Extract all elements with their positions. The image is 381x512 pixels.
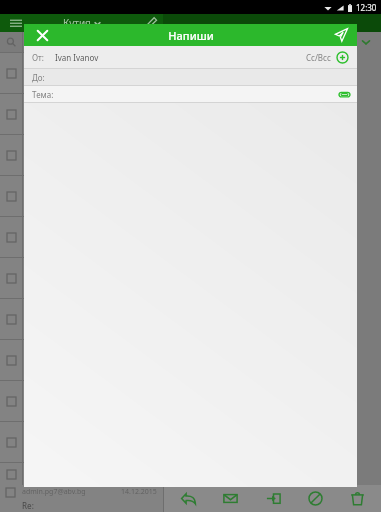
staticText: admin.pg7@abv.bg [22,487,86,497]
button[interactable] [23,135,163,175]
staticText: 12:30 [356,2,377,13]
button[interactable]: От: [24,46,357,68]
button[interactable]: Compose [140,14,162,32]
button[interactable]: Attach file [338,88,351,101]
button[interactable] [0,340,22,380]
staticText: Напиши [168,28,214,43]
button[interactable]: Mail [212,485,248,512]
button[interactable] [0,94,22,134]
button[interactable] [23,299,163,339]
button[interactable] [0,381,22,421]
button[interactable]: До: [24,69,357,85]
button[interactable] [0,299,22,339]
button[interactable] [23,381,163,421]
button[interactable] [23,176,163,216]
button[interactable] [23,258,163,298]
button[interactable] [0,135,22,175]
button[interactable] [0,217,22,257]
button[interactable]: Add Cc Bcc [336,51,349,64]
button[interactable]: Move [255,485,291,512]
button[interactable]: Delete [339,485,375,512]
button[interactable] [23,463,163,485]
button[interactable] [0,422,22,462]
button[interactable] [0,463,22,485]
button[interactable]: Send [325,24,357,46]
staticText: Тема: [32,89,54,100]
button[interactable]: Reply [170,485,206,512]
button[interactable] [0,176,22,216]
staticText: Ivan Ivanov [55,52,99,63]
button[interactable]: Spam [297,485,333,512]
staticText: Re: [22,500,34,511]
staticText: Cc/Bcc [306,52,331,63]
staticText: До: [32,72,45,83]
button[interactable] [0,53,22,93]
button[interactable] [23,422,163,462]
button[interactable] [23,340,163,380]
button[interactable] [0,258,22,298]
staticText: 14.12.2015 [121,487,157,497]
button[interactable]: Close [24,24,60,46]
button[interactable] [23,94,163,134]
staticText: Кутия [63,16,91,30]
button[interactable] [23,53,163,93]
button[interactable] [23,217,163,257]
button[interactable]: Menu [0,14,32,32]
button[interactable]: Тема: [24,86,357,102]
staticText: От: [32,52,44,63]
